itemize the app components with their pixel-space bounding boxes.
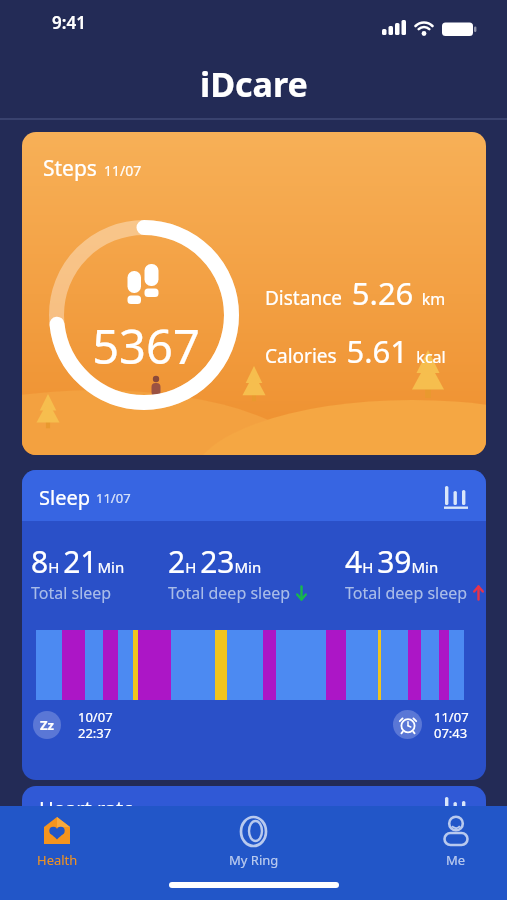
staticText: 8H 21Min: [31, 541, 125, 582]
staticText: iDcare: [200, 61, 308, 107]
staticText: Steps: [43, 154, 97, 183]
staticText: Zz: [40, 716, 54, 734]
staticText: Total deep sleep: [345, 582, 468, 604]
staticText: 4H 39Min: [345, 541, 439, 582]
button[interactable]: Me: [416, 816, 496, 869]
staticText: Distance 5.26 km: [265, 272, 446, 314]
staticText: 10/07 22:37: [78, 708, 113, 741]
staticText: 5367: [92, 314, 200, 378]
staticText: Heart rate: [39, 795, 135, 822]
staticText: 11/07 07:43: [434, 708, 469, 741]
staticText: 11/07: [104, 161, 142, 180]
staticText: Sleep: [39, 484, 90, 511]
staticText: Calories 5.61 kcal: [265, 330, 446, 372]
staticText: 11/07: [96, 489, 131, 507]
staticText: Total sleep: [31, 582, 112, 604]
staticText: Health: [37, 851, 78, 869]
staticText: Total deep sleep: [168, 582, 291, 604]
staticText: 2H 23Min: [168, 541, 262, 582]
button[interactable]: Heart rate: [22, 786, 486, 846]
staticText: My Ring: [229, 851, 279, 869]
staticText: Me: [446, 851, 466, 869]
button[interactable]: My Ring: [214, 816, 294, 869]
button[interactable]: Sleep: [22, 470, 486, 780]
button[interactable]: Steps: [22, 132, 486, 455]
button[interactable]: Health: [17, 816, 97, 869]
staticText: 9:41: [52, 11, 86, 34]
